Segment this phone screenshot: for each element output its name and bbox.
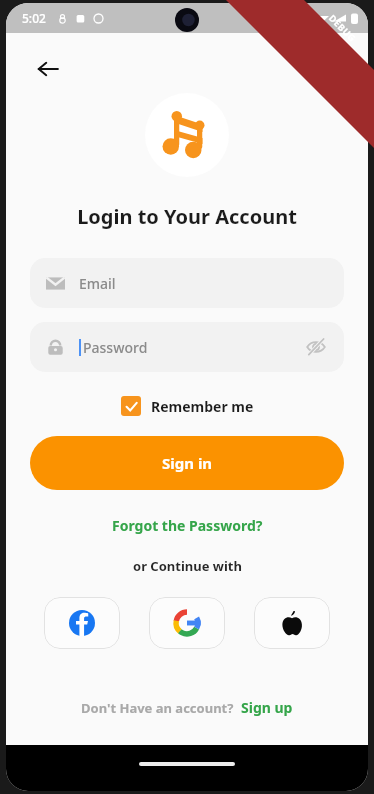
staticText: Don't Have an account?	[81, 699, 234, 717]
button[interactable]: Forgot the Password?	[108, 512, 267, 539]
staticText: 5:02	[22, 10, 46, 26]
button[interactable]: Toggle password visibility	[304, 335, 328, 359]
button[interactable]: Sign in with Apple	[254, 597, 330, 649]
staticText: Login to Your Account	[77, 203, 297, 230]
button[interactable]: Email	[30, 258, 344, 308]
button[interactable]: Sign in with Facebook	[44, 597, 120, 649]
staticText: Sign in	[162, 453, 213, 473]
button[interactable]: Remember me	[117, 394, 258, 418]
button[interactable]: Sign up	[241, 698, 293, 717]
staticText: Remember me	[151, 397, 254, 416]
staticText: Forgot the Password?	[112, 516, 263, 535]
button[interactable]: Sign in with Google	[149, 597, 225, 649]
staticText: or Continue with	[133, 557, 242, 575]
staticText: Sign up	[241, 698, 293, 717]
button[interactable]: Back	[28, 49, 68, 89]
staticText: Password	[83, 338, 148, 357]
button[interactable]: Password	[30, 322, 344, 372]
staticText: DEBUG	[327, 12, 359, 44]
staticText: Email	[79, 274, 116, 293]
button[interactable]: Sign in	[30, 436, 344, 490]
